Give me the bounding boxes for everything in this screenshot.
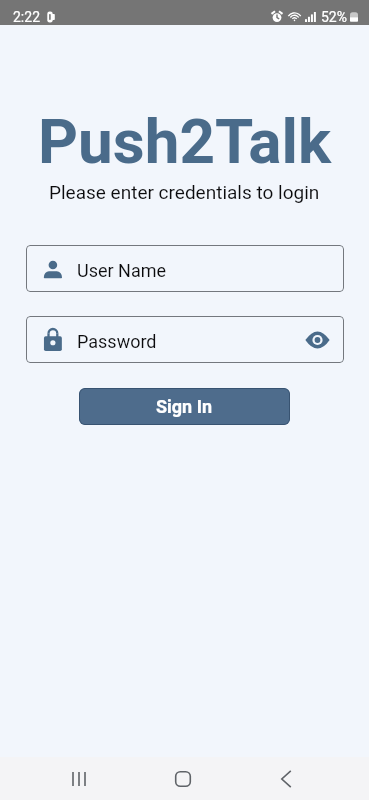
staticText: Please enter credentials to login — [49, 181, 320, 203]
staticText: 52% — [321, 9, 347, 25]
button[interactable]: Sign In — [79, 388, 290, 425]
staticText: 2:22 — [13, 9, 40, 25]
staticText: Sign In — [156, 396, 213, 417]
button[interactable]: Password — [26, 316, 344, 363]
button[interactable]: Home — [153, 757, 213, 800]
button[interactable]: User Name — [26, 245, 344, 292]
button[interactable]: Show password — [297, 320, 337, 360]
button[interactable]: Back — [256, 757, 316, 800]
staticText: Push2Talk — [38, 105, 332, 178]
staticText: Password — [77, 331, 157, 352]
staticText: User Name — [77, 260, 167, 281]
button[interactable]: Recent apps — [49, 757, 109, 800]
